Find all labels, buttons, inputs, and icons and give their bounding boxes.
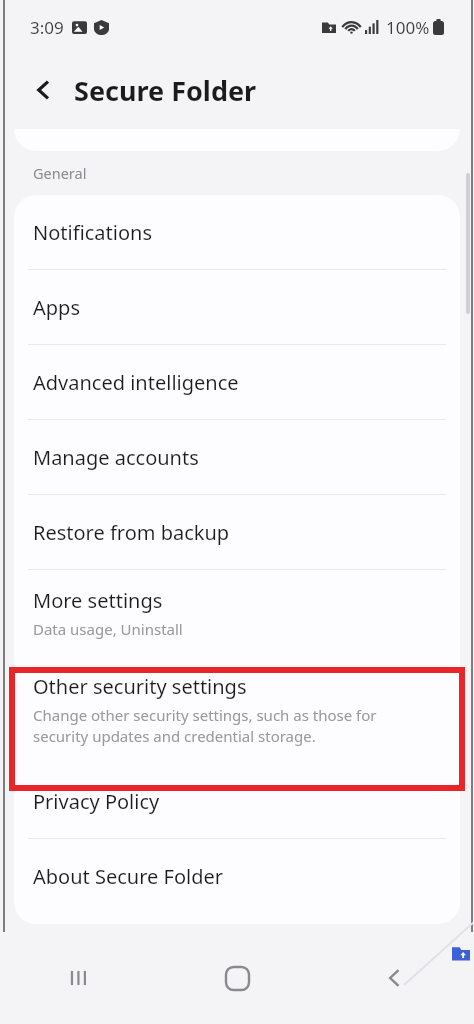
staticText: 3:09 bbox=[30, 16, 64, 39]
button[interactable]: Home bbox=[158, 932, 316, 1024]
button[interactable]: Privacy Policy bbox=[14, 764, 460, 838]
button[interactable]: Manage accounts bbox=[14, 420, 460, 494]
staticText: Privacy Policy bbox=[33, 788, 160, 815]
button[interactable]: Restore from backup bbox=[14, 495, 460, 569]
staticText: Advanced intelligence bbox=[33, 369, 239, 396]
button[interactable]: Notifications bbox=[14, 195, 460, 269]
staticText: Manage accounts bbox=[33, 444, 199, 471]
staticText: 100% bbox=[386, 16, 430, 39]
button[interactable]: Back bbox=[316, 932, 474, 1024]
staticText: General bbox=[33, 163, 87, 183]
button[interactable]: Recents bbox=[0, 932, 158, 1024]
button[interactable]: More settings bbox=[14, 570, 460, 656]
staticText: Change other security settings, such as … bbox=[33, 705, 377, 747]
button[interactable]: Back bbox=[22, 68, 66, 112]
staticText: About Secure Folder bbox=[33, 863, 223, 890]
staticText: Secure Folder bbox=[74, 72, 257, 109]
staticText: Other security settings bbox=[33, 673, 247, 700]
staticText: Notifications bbox=[33, 219, 152, 246]
button[interactable]: About Secure Folder bbox=[14, 839, 460, 913]
staticText: Data usage, Uninstall bbox=[33, 619, 183, 639]
button[interactable]: Apps bbox=[14, 270, 460, 344]
button[interactable]: Advanced intelligence bbox=[14, 345, 460, 419]
staticText: More settings bbox=[33, 587, 163, 614]
button[interactable]: Other security settings bbox=[14, 656, 460, 764]
staticText: Restore from backup bbox=[33, 519, 230, 546]
staticText: Apps bbox=[33, 294, 80, 321]
